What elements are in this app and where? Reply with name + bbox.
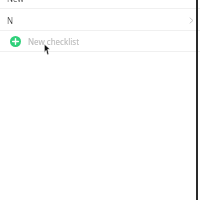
button[interactable]: New checklist	[0, 31, 200, 52]
staticText: New checklist	[28, 36, 80, 47]
button[interactable]: N	[0, 9, 200, 31]
button[interactable]: New	[0, 0, 200, 9]
staticText: New	[7, 0, 24, 2]
staticText: N	[7, 15, 14, 26]
other: Open	[187, 16, 196, 25]
